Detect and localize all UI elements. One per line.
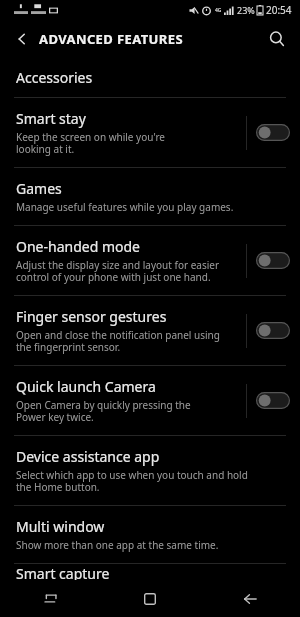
staticText: Open and close the notification panel us… xyxy=(16,328,220,354)
staticText: Smart stay xyxy=(16,109,86,128)
button[interactable]: Home xyxy=(100,580,200,617)
button[interactable]: Multi window xyxy=(0,506,300,563)
button[interactable]: Search xyxy=(262,24,292,54)
staticText: Multi window xyxy=(16,517,105,536)
button[interactable]: Smart capture xyxy=(0,564,300,580)
staticText: Quick launch Camera xyxy=(16,377,156,396)
button[interactable]: Device assistance app xyxy=(0,436,300,505)
button[interactable]: Quick launch Camera toggle xyxy=(256,392,290,409)
button[interactable]: Recents xyxy=(0,580,100,617)
staticText: Manage useful features while you play ga… xyxy=(16,200,234,214)
staticText: Select which app to use when you touch a… xyxy=(16,468,248,494)
staticText: Accessories xyxy=(16,68,93,87)
staticText: Finger sensor gestures xyxy=(16,307,167,326)
staticText: 20:54 xyxy=(266,3,292,17)
staticText: 4G xyxy=(215,7,222,14)
button[interactable]: Accessories xyxy=(0,57,300,97)
button[interactable]: Smart stay toggle xyxy=(256,124,290,141)
staticText: Smart capture xyxy=(16,564,110,580)
button[interactable]: Back xyxy=(200,580,300,617)
button[interactable]: Quick launch Camera xyxy=(0,366,300,435)
staticText: Adjust the display size and layout for e… xyxy=(16,258,220,284)
button[interactable]: Back xyxy=(8,25,36,53)
button[interactable]: Games xyxy=(0,168,300,225)
button[interactable]: One-handed mode xyxy=(0,226,300,295)
button[interactable]: Finger sensor gestures xyxy=(0,296,300,365)
button[interactable]: Finger sensor gestures toggle xyxy=(256,322,290,339)
staticText: Open Camera by quickly pressing the Powe… xyxy=(16,398,191,424)
staticText: Device assistance app xyxy=(16,447,160,466)
staticText: Keep the screen on while you're looking … xyxy=(16,130,165,156)
button[interactable]: One-handed mode toggle xyxy=(256,252,290,269)
staticText: 23% xyxy=(237,4,255,16)
staticText: ADVANCED FEATURES xyxy=(39,30,184,48)
staticText: Show more than one app at the same time. xyxy=(16,538,219,552)
staticText: Games xyxy=(16,179,62,198)
staticText: One-handed mode xyxy=(16,237,140,256)
button[interactable]: Smart stay xyxy=(0,98,300,167)
